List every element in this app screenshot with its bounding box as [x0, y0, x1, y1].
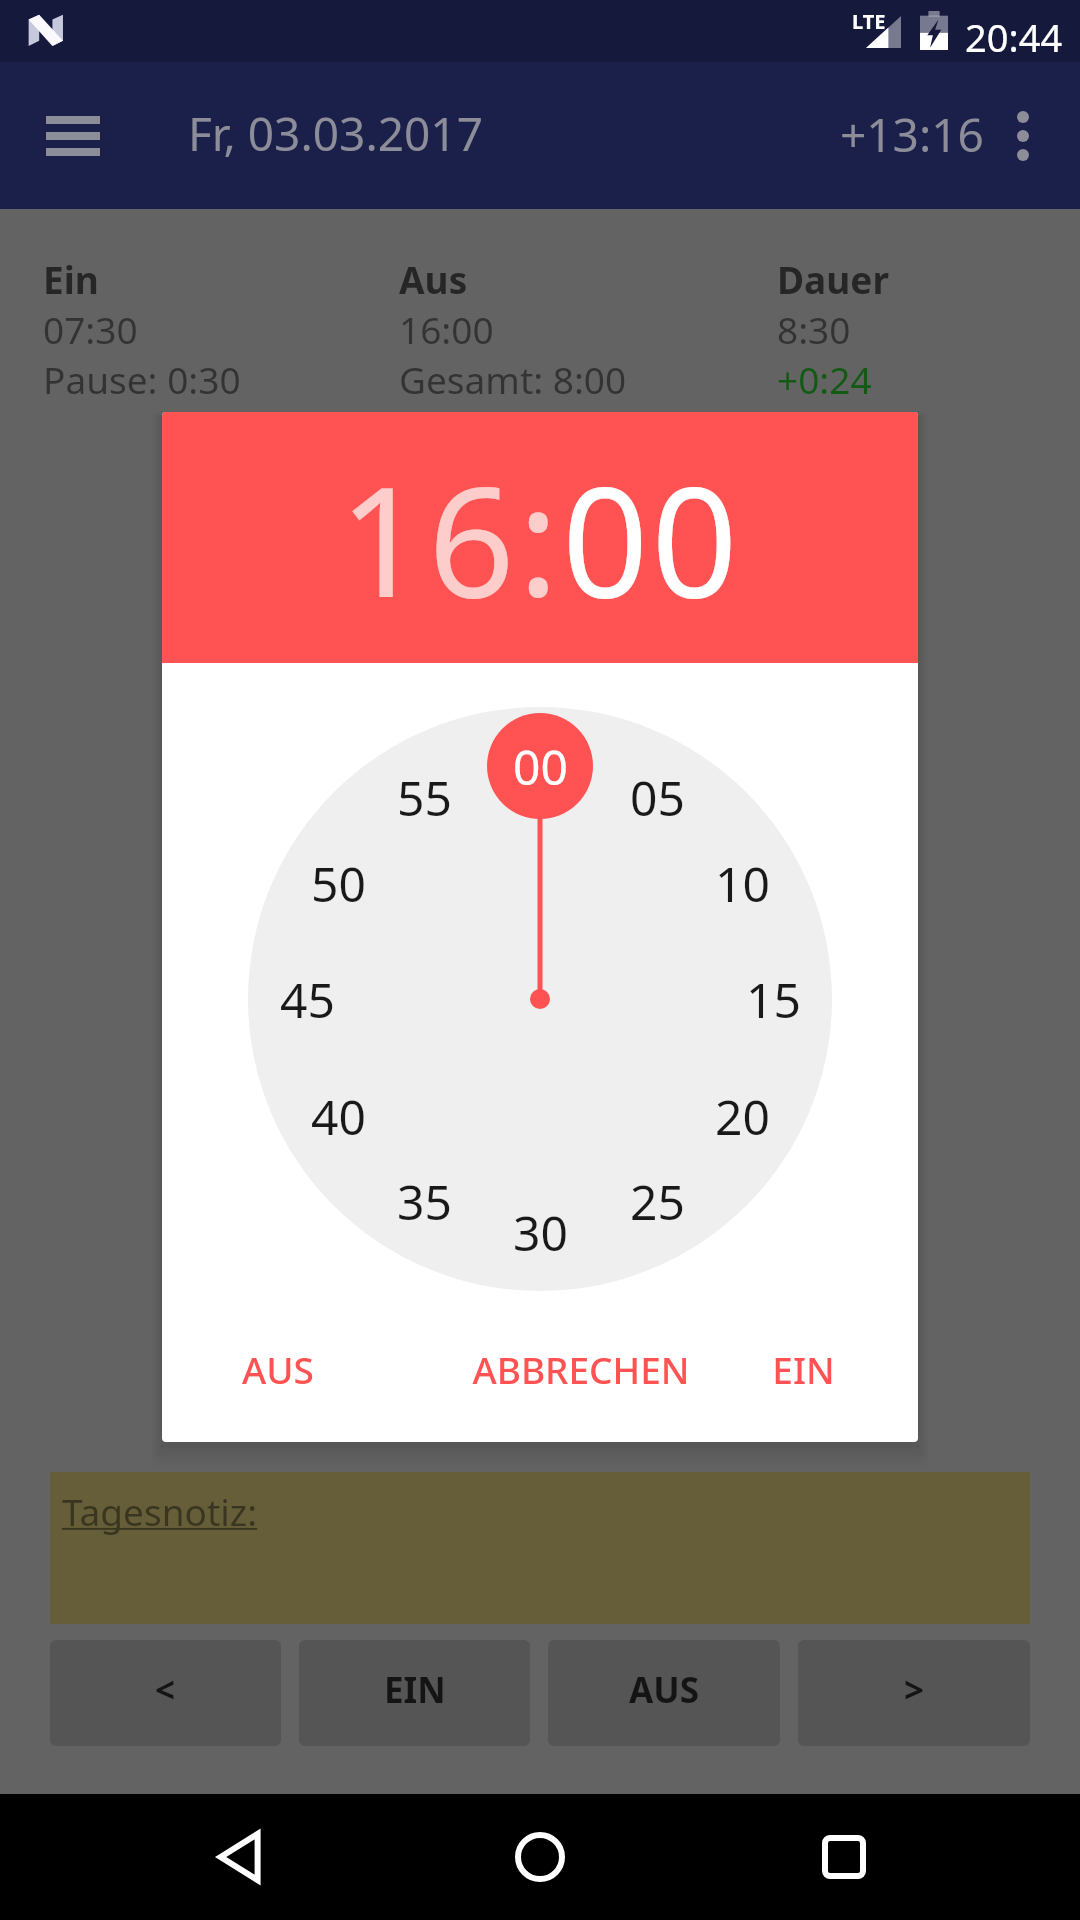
button[interactable]: Home: [480, 1797, 600, 1917]
staticText: 8:30: [777, 304, 851, 354]
button[interactable]: 50: [311, 851, 366, 916]
button[interactable]: 20: [715, 1084, 770, 1149]
staticText: LTE: [852, 8, 886, 35]
staticText: 16:00: [399, 304, 494, 354]
button[interactable]: 40: [311, 1084, 366, 1149]
staticText: :: [518, 435, 562, 641]
button[interactable]: EIN: [299, 1640, 530, 1746]
staticText: Tagesnotiz:: [62, 1486, 258, 1536]
staticText: <: [155, 1666, 176, 1714]
button[interactable]: Open navigation drawer: [18, 81, 128, 191]
button[interactable]: Recent apps: [780, 1797, 900, 1917]
staticText: 00: [562, 436, 741, 639]
staticText: EIN: [772, 1344, 835, 1394]
button[interactable]: EIN: [743, 1324, 863, 1414]
staticText: 20:44: [965, 11, 1063, 63]
staticText: >: [904, 1666, 925, 1714]
button[interactable]: 35: [397, 1169, 452, 1234]
staticText: ABBRECHEN: [472, 1344, 690, 1394]
button[interactable]: 00: [513, 734, 568, 799]
button[interactable]: 10: [715, 851, 770, 916]
staticText: +13:16: [840, 103, 984, 166]
staticText: Ein: [43, 254, 99, 304]
button[interactable]: More options: [979, 92, 1067, 180]
button[interactable]: 30: [513, 1200, 568, 1265]
staticText: EIN: [384, 1666, 446, 1714]
button[interactable]: 15: [746, 967, 801, 1032]
staticText: AUS: [629, 1666, 699, 1714]
staticText: Aus: [399, 254, 468, 304]
staticText: 07:30: [43, 304, 138, 354]
button[interactable]: 55: [397, 765, 452, 830]
button[interactable]: Back: [180, 1797, 300, 1917]
button[interactable]: 05: [630, 765, 685, 830]
button[interactable]: 25: [630, 1169, 685, 1234]
staticText: Dauer: [777, 254, 889, 304]
button[interactable]: AUS: [208, 1324, 348, 1414]
staticText: +0:24: [777, 354, 872, 404]
button[interactable]: 00: [562, 412, 741, 663]
button[interactable]: 45: [280, 967, 335, 1032]
button[interactable]: ABBRECHEN: [441, 1324, 721, 1414]
staticText: Fr, 03.03.2017: [188, 102, 483, 165]
button[interactable]: AUS: [548, 1640, 780, 1746]
staticText: Gesamt: 8:00: [399, 354, 627, 404]
button[interactable]: >: [798, 1640, 1030, 1746]
button[interactable]: Tagesnotiz:: [50, 1472, 1030, 1624]
staticText: AUS: [242, 1344, 314, 1394]
staticText: Pause: 0:30: [43, 354, 241, 404]
staticText: 16: [339, 436, 518, 639]
button[interactable]: <: [50, 1640, 281, 1746]
button[interactable]: 16: [339, 412, 518, 663]
